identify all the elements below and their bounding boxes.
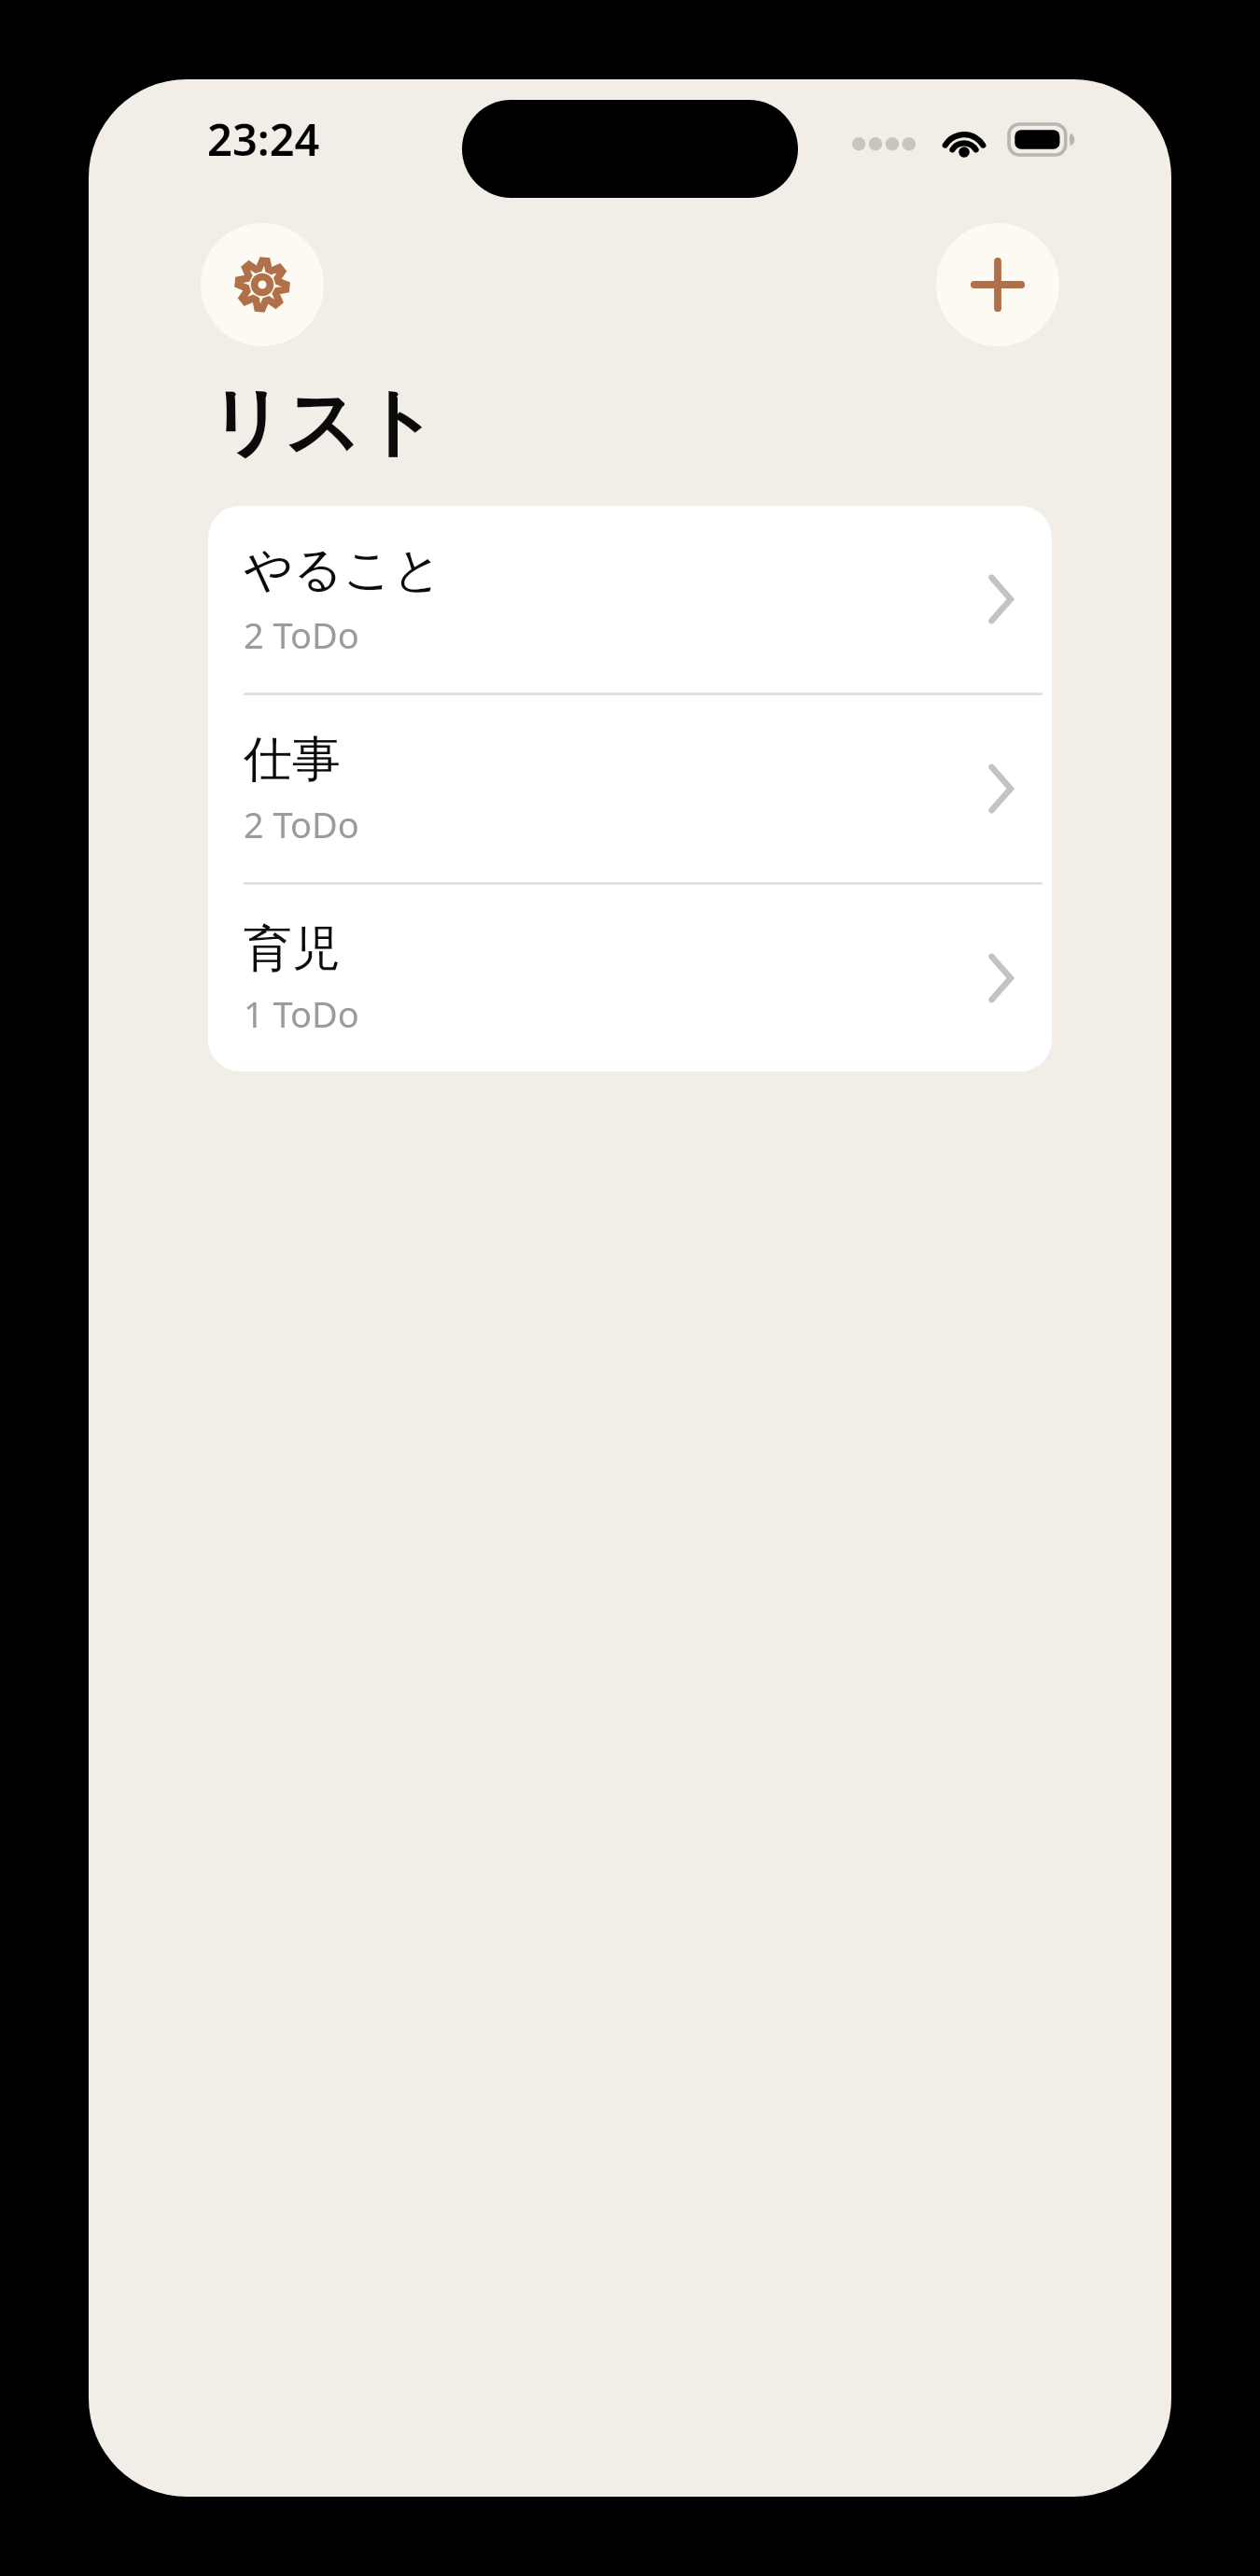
staticText: 1 ToDo [244, 989, 359, 1038]
button[interactable]: 育児 [208, 885, 1052, 1071]
button[interactable]: Settings [201, 223, 324, 346]
staticText: 仕事 [244, 729, 341, 791]
button[interactable]: Add list [936, 223, 1059, 346]
staticText: 2 ToDo [244, 610, 359, 659]
staticText: リスト [208, 376, 438, 470]
button[interactable]: 仕事 [208, 695, 1052, 882]
staticText: 育児 [244, 918, 341, 980]
button[interactable]: やること [208, 506, 1052, 693]
staticText: やること [244, 539, 442, 601]
staticText: 2 ToDo [244, 800, 359, 848]
staticText: 23:24 [207, 109, 320, 169]
